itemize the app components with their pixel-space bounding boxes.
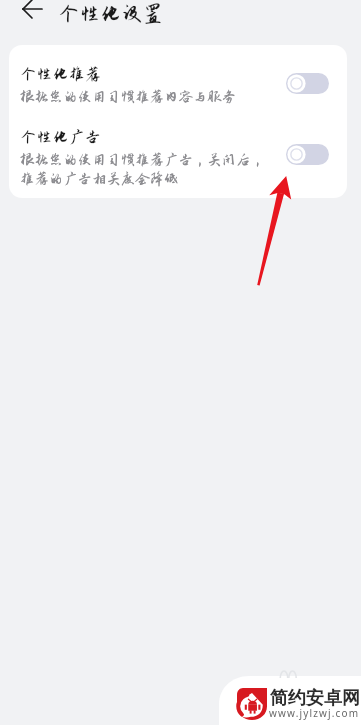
staticText: 根据您的使用习惯推荐内容与服务 <box>20 89 237 105</box>
staticText: 个性化设置 <box>58 2 164 26</box>
button[interactable]: 个性化广告开关 <box>286 144 329 165</box>
staticText: 根据您的使用习惯推荐广告，关闭后， 推荐的广告相关度会降低 <box>20 152 265 187</box>
staticText: 简约安卓网 <box>270 687 360 710</box>
staticText: 个性化广告 <box>20 128 101 146</box>
button[interactable]: Back <box>11 0 53 37</box>
staticText: www.jylzwj.com <box>269 706 360 720</box>
staticText: 个性化推荐 <box>20 65 101 83</box>
button[interactable] <box>9 111 347 196</box>
button[interactable] <box>9 45 347 111</box>
button[interactable]: 个性化推荐开关 <box>286 73 329 94</box>
